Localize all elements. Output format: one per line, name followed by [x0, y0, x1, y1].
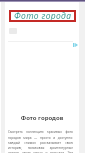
- staticText: Фото города: [14, 10, 72, 22]
- staticText: Фото городов: [0, 114, 84, 122]
- button[interactable]: Фото города: [9, 10, 76, 22]
- other: Play: [73, 43, 78, 47]
- staticText: Смотреть коллекцию красивых фото городов…: [8, 130, 73, 153]
